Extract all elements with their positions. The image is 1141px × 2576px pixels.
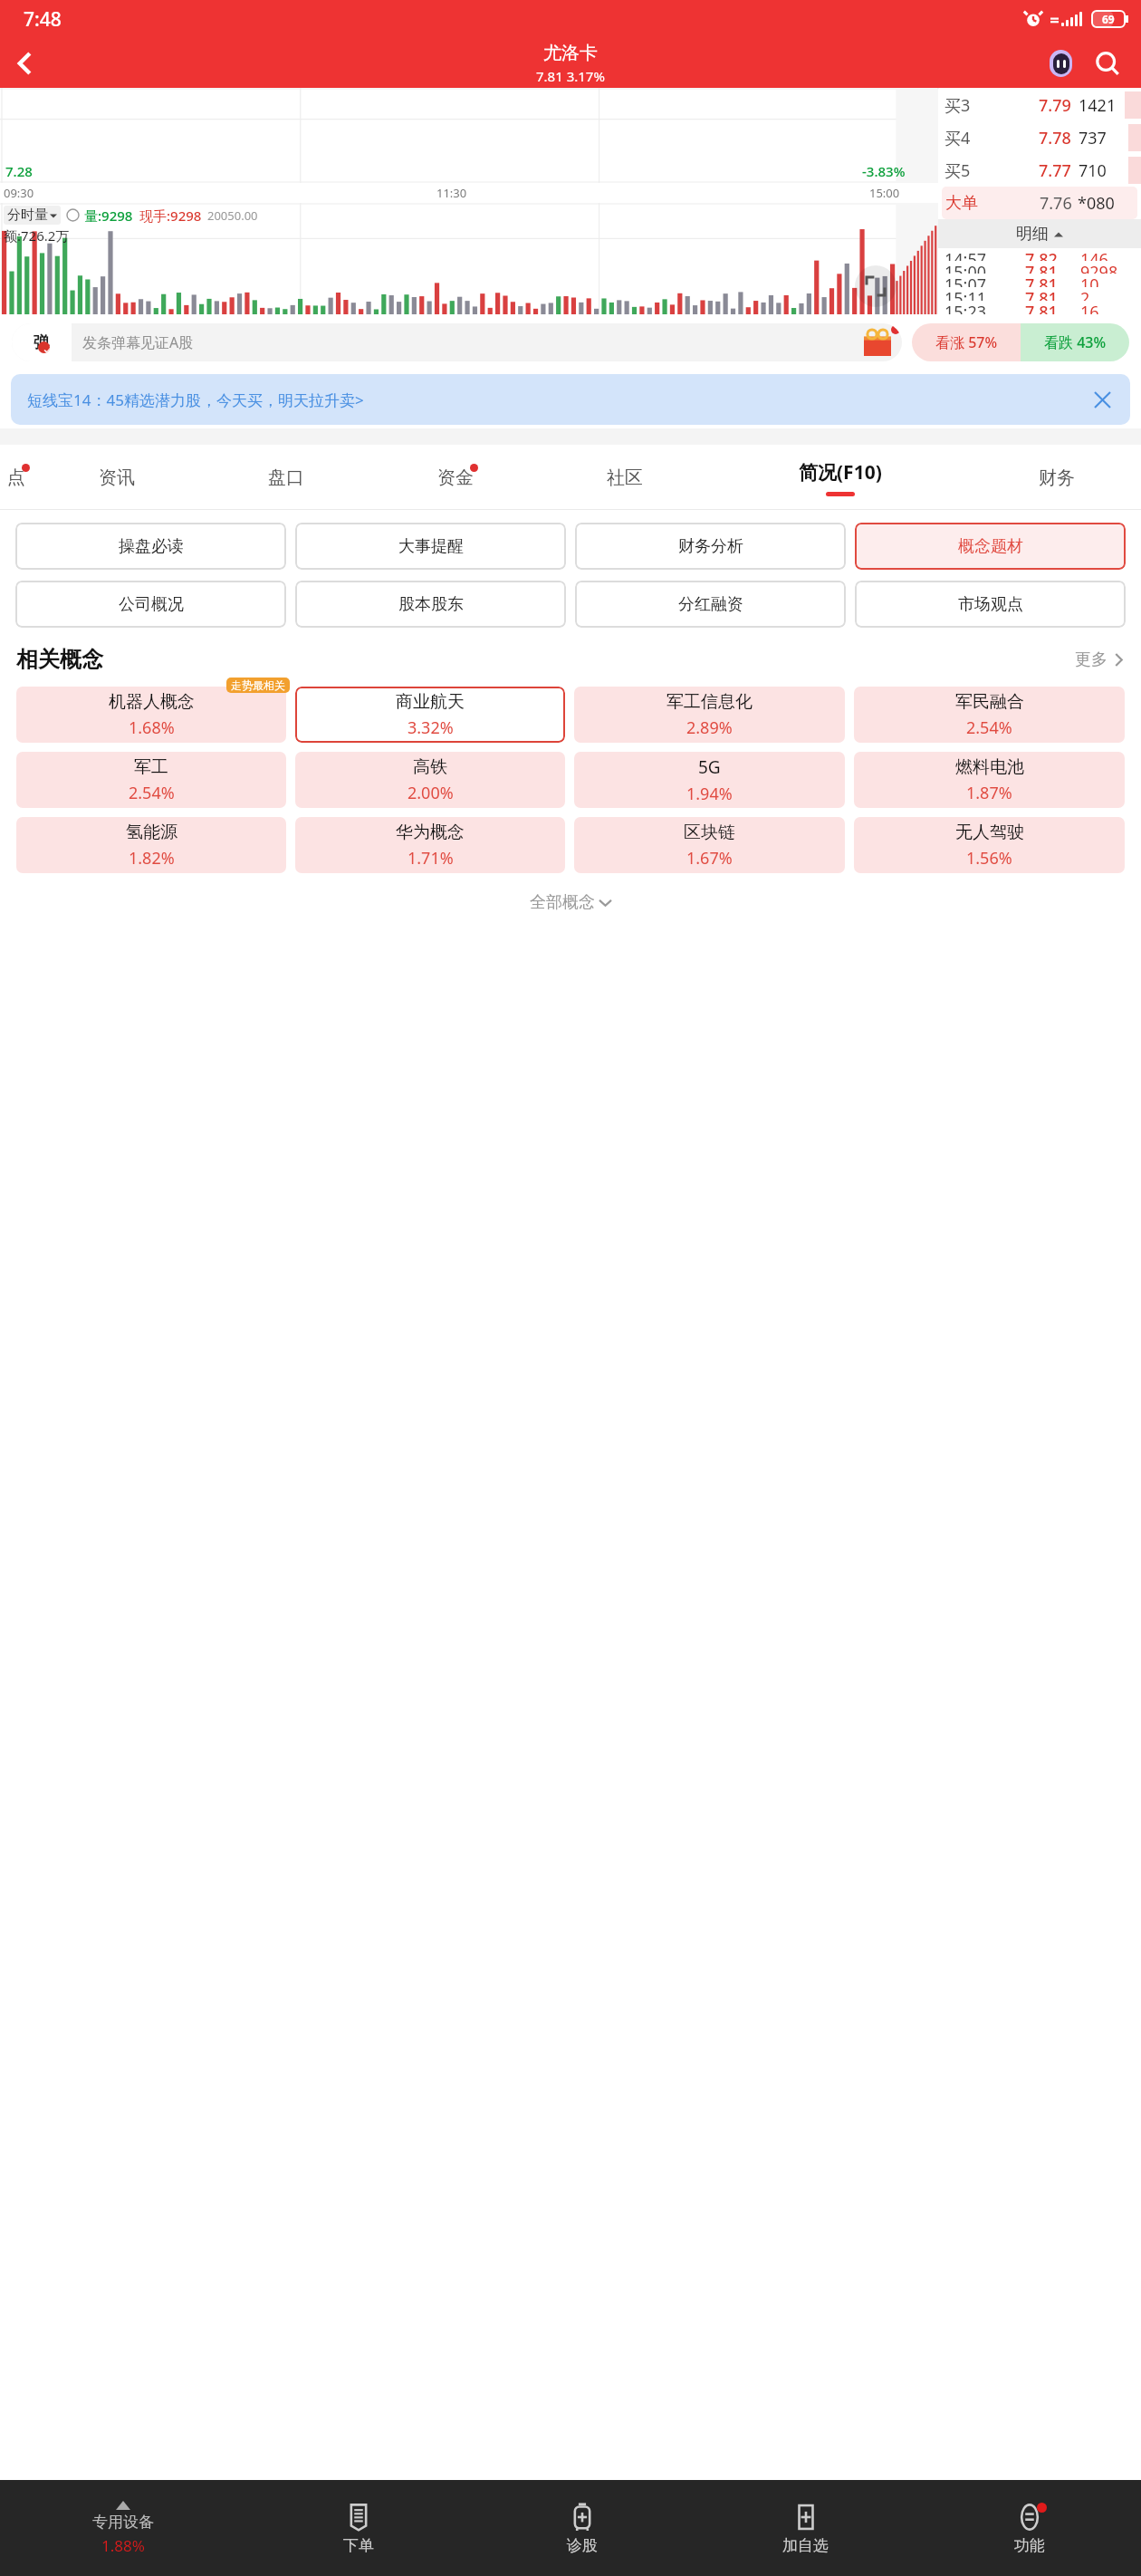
button[interactable]: 操盘必读 — [15, 523, 286, 570]
button[interactable]: 大单 — [942, 187, 1137, 219]
button[interactable]: 资金 — [370, 445, 540, 510]
button[interactable]: 15:11 — [944, 287, 1135, 301]
button[interactable]: 下单 — [246, 2480, 470, 2576]
button[interactable]: 14:57 — [944, 248, 1135, 261]
button[interactable]: 5G — [574, 752, 845, 808]
button[interactable]: 股本股东 — [295, 581, 566, 628]
button[interactable]: 军工信息化 — [574, 687, 845, 743]
button[interactable]: 看涨 57% — [912, 323, 1021, 361]
button[interactable]: 大事提醒 — [295, 523, 566, 570]
button[interactable]: 市场观点 — [855, 581, 1126, 628]
staticText: 7.78 — [1039, 127, 1071, 149]
button[interactable]: Fullscreen — [855, 265, 896, 307]
button[interactable]: 资讯 — [33, 445, 201, 510]
button[interactable]: AI assistant — [1040, 43, 1081, 84]
staticText: 买4 — [944, 127, 971, 149]
button[interactable]: 点 — [0, 445, 33, 510]
button[interactable]: 公司概况 — [15, 581, 286, 628]
button[interactable]: 财务 — [972, 445, 1141, 510]
staticText: 大单 — [945, 193, 978, 214]
button[interactable]: 更多 — [1075, 649, 1125, 670]
staticText: 7.77 — [1039, 159, 1071, 182]
button[interactable]: Search — [1087, 43, 1128, 84]
button[interactable]: 弹 — [12, 323, 902, 361]
button[interactable]: 专用设备 — [0, 2480, 246, 2576]
staticText: 无人驾驶 — [955, 822, 1024, 843]
staticText: 全部概念 — [530, 892, 595, 913]
button[interactable]: 明细 — [938, 219, 1141, 248]
staticText: 737 — [1079, 127, 1135, 149]
button[interactable]: 区块链 — [574, 817, 845, 873]
staticText: 2.89% — [686, 716, 733, 739]
staticText: 现手:9298 — [139, 207, 202, 225]
staticText: 分红融资 — [678, 594, 743, 615]
button[interactable]: 15:00 — [944, 261, 1135, 274]
staticText: 诊股 — [567, 2536, 598, 2555]
button[interactable]: 概念题材 — [855, 523, 1126, 570]
staticText: 16 — [1080, 301, 1135, 314]
staticText: 7.81 — [1025, 274, 1058, 287]
button[interactable]: 盘口 — [201, 445, 370, 510]
button[interactable]: 看跌 43% — [1021, 323, 1129, 361]
staticText: 3.32% — [407, 716, 454, 739]
button[interactable]: 社区 — [540, 445, 709, 510]
staticText: 概念题材 — [958, 536, 1023, 557]
staticText: 7.81 — [1025, 287, 1058, 301]
button[interactable]: 短线宝14：45精选潜力股，今天买，明天拉升卖> — [11, 374, 1130, 425]
staticText: 大事提醒 — [398, 536, 464, 557]
staticText: 燃料电池 — [955, 756, 1024, 778]
button[interactable]: 加自选 — [694, 2480, 917, 2576]
button[interactable]: 15:23 — [944, 301, 1135, 314]
staticText: 1.94% — [686, 783, 733, 805]
button[interactable]: 诊股 — [470, 2480, 694, 2576]
button[interactable]: 全部概念 — [530, 892, 611, 913]
staticText: 公司概况 — [119, 594, 184, 615]
staticText: 1421 — [1079, 94, 1135, 117]
button[interactable]: 买4 — [938, 121, 1141, 154]
button[interactable]: 分红融资 — [575, 581, 846, 628]
button[interactable]: 军工 — [16, 752, 286, 808]
staticText: 高铁 — [413, 756, 447, 778]
staticText: 7.79 — [1039, 94, 1071, 117]
staticText: 军工信息化 — [666, 691, 753, 713]
staticText: 1.56% — [966, 847, 1012, 870]
staticText: 7.28 — [5, 162, 33, 180]
staticText: 走势最相关 — [231, 678, 285, 692]
button[interactable]: 功能 — [917, 2480, 1141, 2576]
button[interactable]: 燃料电池 — [854, 752, 1125, 808]
staticText: 区块链 — [684, 822, 735, 843]
staticText: 机器人概念 — [109, 691, 195, 713]
staticText: 军民融合 — [955, 691, 1024, 713]
button[interactable]: 氢能源 — [16, 817, 286, 873]
staticText: 量:9298 — [84, 207, 133, 225]
button[interactable]: 15:07 — [944, 274, 1135, 287]
staticText: *080 — [1078, 192, 1134, 215]
staticText: 7.76 — [1040, 192, 1072, 215]
button[interactable]: 无人驾驶 — [854, 817, 1125, 873]
staticText: 尤洛卡 — [543, 42, 598, 64]
button[interactable]: 商业航天 — [295, 687, 565, 743]
staticText: 军工 — [134, 756, 168, 778]
button[interactable]: 机器人概念 — [16, 687, 286, 743]
staticText: 华为概念 — [396, 822, 465, 843]
staticText: 弹 — [34, 332, 50, 353]
staticText: 商业航天 — [396, 691, 465, 713]
button[interactable]: Close — [1087, 384, 1117, 415]
button[interactable]: 财务分析 — [575, 523, 846, 570]
button[interactable]: 华为概念 — [295, 817, 565, 873]
staticText: 相关概念 — [16, 646, 103, 673]
staticText: 09:30 — [4, 185, 34, 201]
staticText: 14:57 — [944, 248, 987, 261]
staticText: 1.87% — [966, 782, 1012, 804]
button[interactable]: 简况(F10) — [709, 445, 972, 510]
button[interactable]: 高铁 — [295, 752, 565, 808]
button[interactable]: 买3 — [938, 89, 1141, 121]
staticText: 资金 — [437, 466, 474, 489]
staticText: 下单 — [343, 2536, 374, 2555]
button[interactable]: Back — [0, 38, 51, 88]
button[interactable]: 买5 — [938, 154, 1141, 187]
staticText: 氢能源 — [126, 822, 177, 843]
button[interactable]: 军民融合 — [854, 687, 1125, 743]
button[interactable]: 分时量 — [7, 207, 57, 224]
staticText: 10 — [1080, 274, 1135, 287]
